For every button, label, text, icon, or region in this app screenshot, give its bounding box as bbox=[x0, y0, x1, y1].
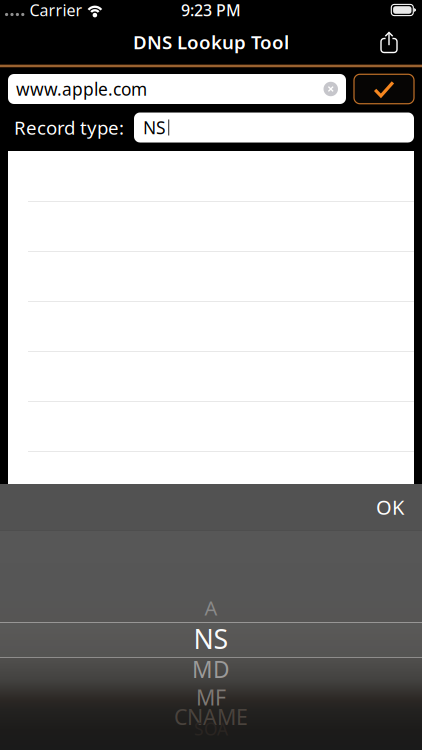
staticText: SOA bbox=[194, 717, 228, 740]
staticText: CNAME bbox=[174, 703, 248, 731]
staticText: MF bbox=[196, 683, 226, 711]
staticText: 9:23 PM bbox=[181, 0, 241, 21]
staticText: MD bbox=[192, 654, 230, 684]
button[interactable]: www.apple.com bbox=[8, 74, 346, 104]
staticText: Carrier bbox=[29, 0, 82, 21]
button[interactable]: Share bbox=[368, 21, 408, 63]
staticText: DNS Lookup Tool bbox=[133, 30, 289, 54]
staticText: NS bbox=[143, 116, 166, 139]
button[interactable]: OK bbox=[364, 486, 414, 528]
button[interactable]: Look up bbox=[354, 74, 414, 104]
staticText: OK bbox=[376, 494, 404, 520]
staticText: A bbox=[204, 594, 217, 621]
button[interactable]: NS bbox=[134, 112, 414, 142]
staticText: Record type: bbox=[14, 115, 124, 140]
button[interactable]: Record type picker, NS selected bbox=[0, 531, 422, 750]
staticText: NS bbox=[193, 621, 228, 656]
staticText: www.apple.com bbox=[16, 77, 147, 100]
